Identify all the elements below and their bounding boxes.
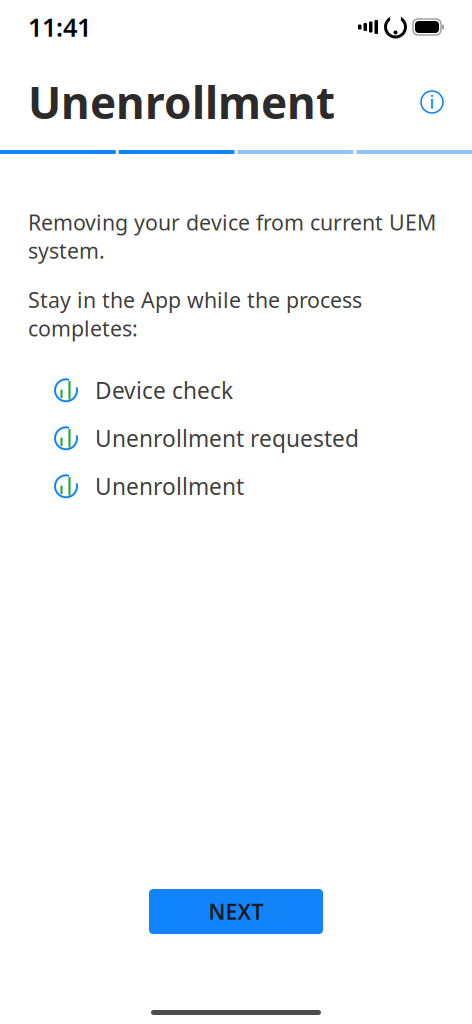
button[interactable]: Information [410,80,454,124]
staticText: Removing your device from current UEM sy… [28,208,436,265]
staticText: Device check [95,375,233,405]
staticText: Unenrollment [95,471,244,501]
staticText: Unenrollment requested [95,423,359,453]
staticText: i [429,90,434,113]
button[interactable]: NEXT [149,889,323,934]
staticText: Stay in the App while the process comple… [28,286,362,342]
staticText: 11:41 [28,10,91,44]
staticText: Unenrollment [28,73,335,131]
staticText: NEXT [208,897,263,926]
